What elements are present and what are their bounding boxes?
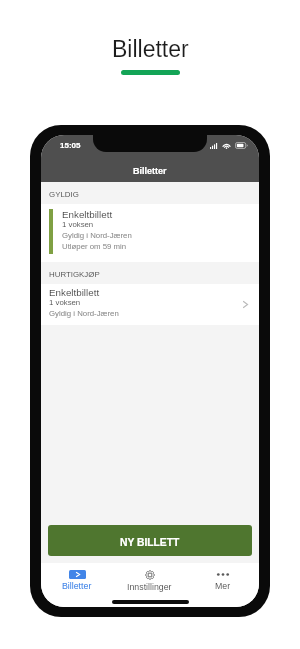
staticText: Billetter: [133, 166, 167, 176]
button[interactable]: Billetter: [41, 563, 113, 591]
button[interactable]: NY BILLETT: [48, 525, 252, 556]
staticText: Gyldig i Nord-Jæren: [49, 309, 119, 318]
staticText: Enkeltbillett: [49, 287, 100, 298]
staticText: 15:05: [60, 141, 81, 150]
button[interactable]: Mer: [186, 563, 259, 591]
staticText: NY BILLETT: [120, 537, 180, 549]
staticText: GYLDIG: [49, 190, 79, 199]
staticText: 1 voksen: [62, 220, 94, 229]
staticText: Billetter: [112, 36, 189, 62]
staticText: Utløper om 59 min: [62, 242, 127, 251]
staticText: HURTIGKJØP: [49, 270, 100, 279]
staticText: Gyldig i Nord-Jæren: [62, 231, 132, 240]
staticText: Mer: [215, 581, 231, 591]
staticText: Enkeltbillett: [62, 209, 113, 220]
staticText: 1 voksen: [49, 298, 81, 307]
button[interactable]: Innstillinger: [113, 563, 186, 592]
staticText: Innstillinger: [127, 582, 172, 592]
staticText: Billetter: [62, 581, 92, 591]
button[interactable]: Enkeltbillett: [41, 204, 259, 262]
button[interactable]: Enkeltbillett: [41, 284, 259, 325]
